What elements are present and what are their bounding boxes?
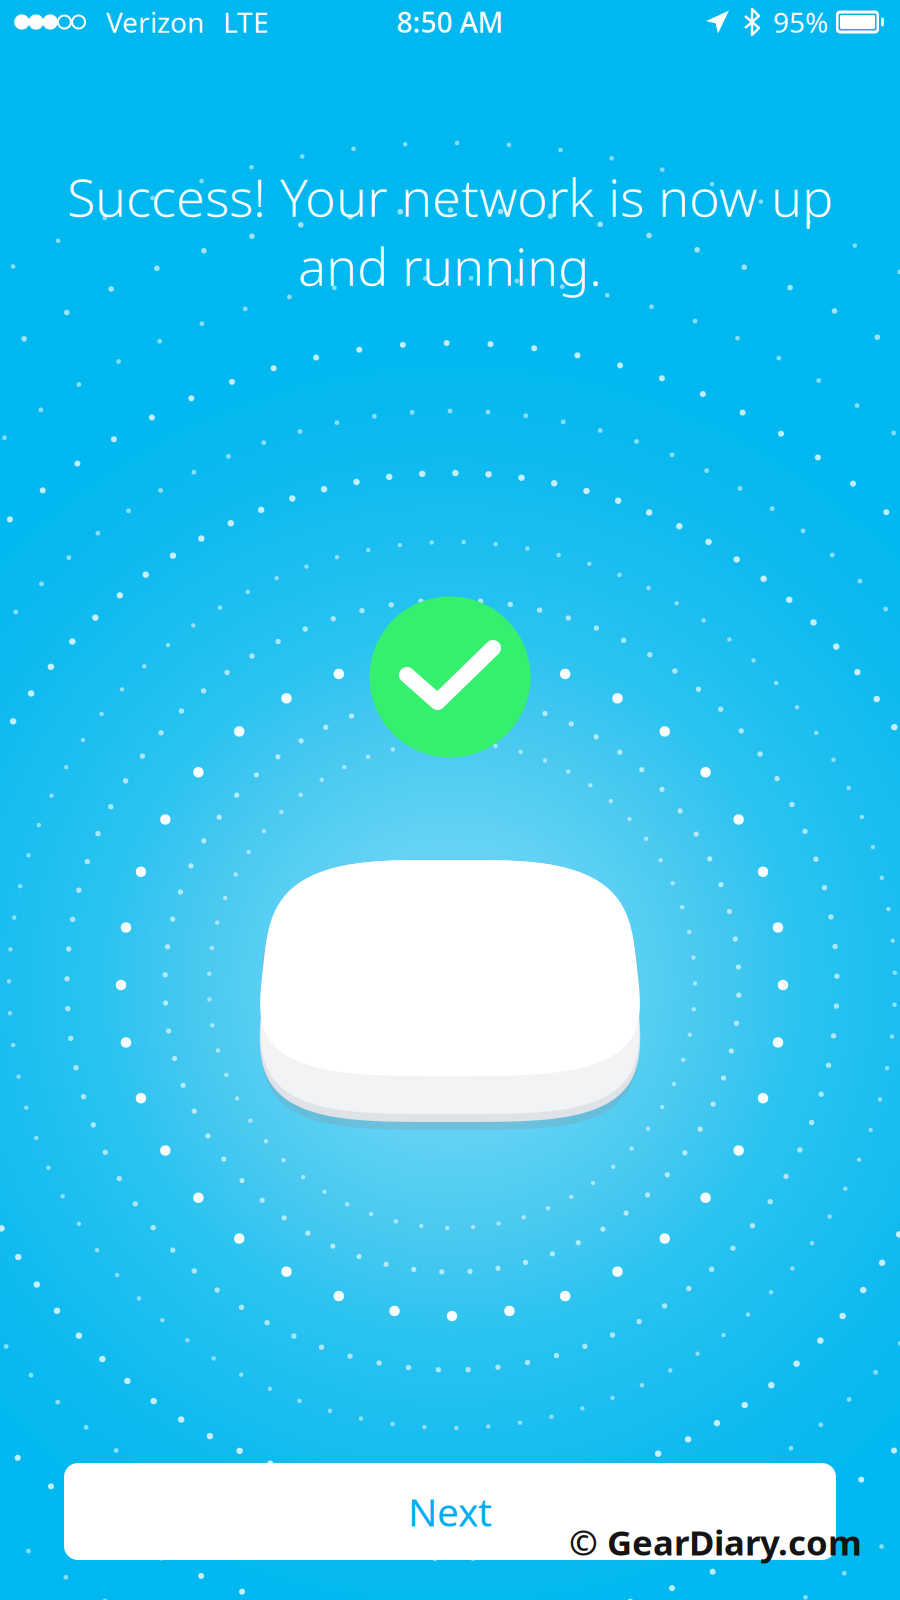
staticText: and running.	[298, 231, 602, 300]
staticText: Next	[408, 1486, 492, 1537]
staticText: 8:50 AM	[396, 3, 503, 41]
staticText: 95%	[773, 3, 828, 41]
staticText: © GearDiary.com	[569, 1519, 862, 1565]
staticText: Success! Your network is now up	[67, 162, 833, 231]
staticText: Verizon	[106, 3, 204, 41]
staticText: LTE	[223, 3, 269, 41]
button[interactable]: Next	[64, 1463, 836, 1560]
